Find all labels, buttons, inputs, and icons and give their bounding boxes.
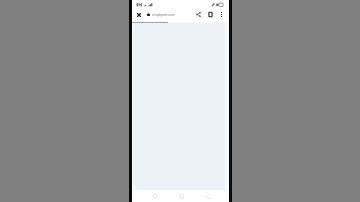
- button[interactable]: Home: [168, 190, 194, 202]
- button[interactable]: More options: [216, 9, 227, 20]
- button[interactable]: Recent apps: [141, 190, 168, 202]
- button[interactable]: Share: [193, 9, 204, 20]
- button[interactable]: Close: [132, 9, 145, 20]
- button[interactable]: m.apkpure.com: [147, 9, 175, 20]
- staticText: m.apkpure.com: [152, 13, 175, 17]
- button[interactable]: Open in browser: [205, 9, 216, 20]
